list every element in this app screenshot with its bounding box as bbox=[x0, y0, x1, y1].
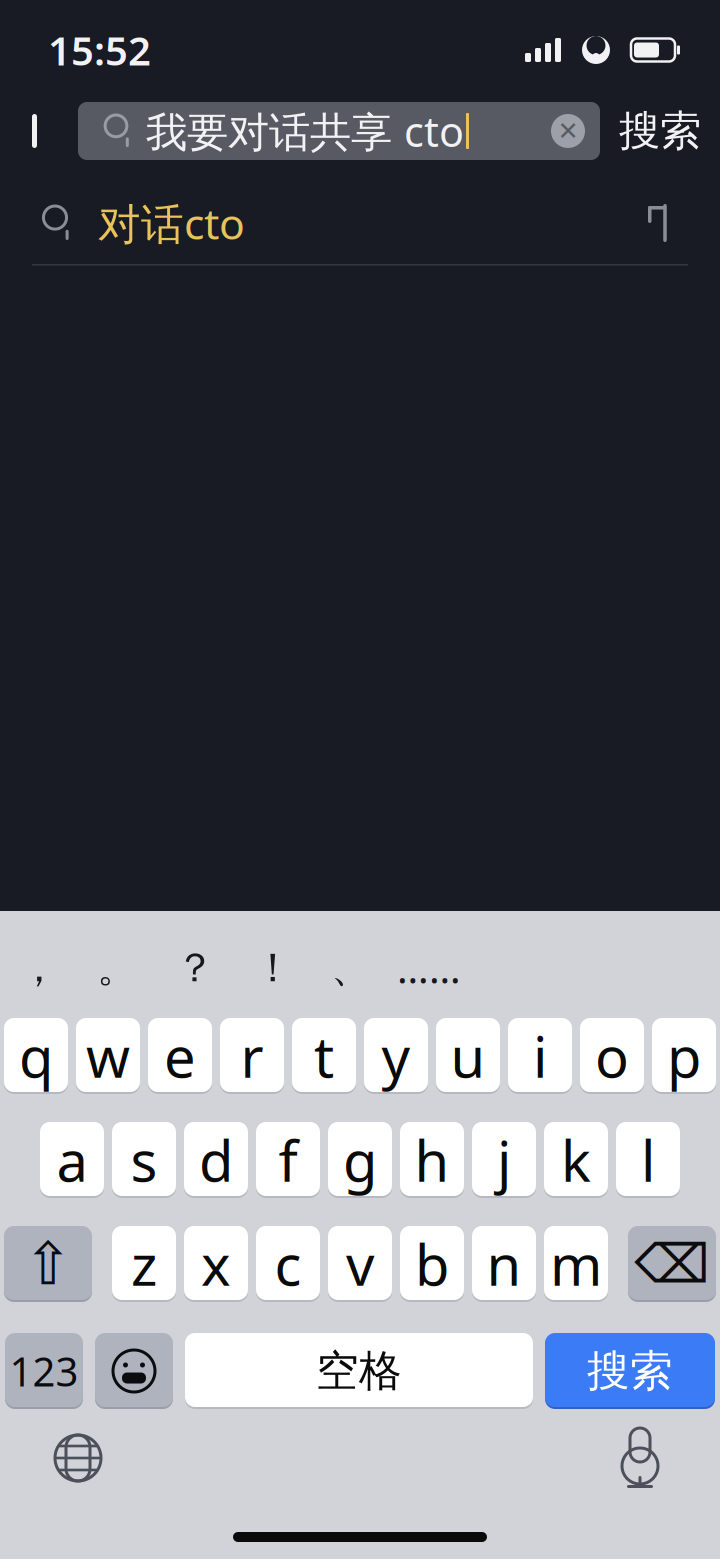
button[interactable]: p bbox=[652, 1018, 716, 1094]
button[interactable]: u bbox=[436, 1018, 500, 1094]
staticText: n bbox=[486, 1227, 521, 1301]
button[interactable]: r bbox=[220, 1018, 284, 1094]
button[interactable]: y bbox=[364, 1018, 428, 1094]
button[interactable]: 搜索 bbox=[545, 1333, 715, 1409]
button[interactable]: v bbox=[328, 1226, 392, 1302]
staticText: p bbox=[667, 1019, 701, 1093]
staticText: k bbox=[561, 1123, 591, 1197]
staticText: c bbox=[274, 1227, 301, 1301]
button[interactable]: Numbers bbox=[5, 1333, 83, 1409]
staticText: w bbox=[86, 1019, 130, 1093]
button[interactable]: c bbox=[256, 1226, 320, 1302]
staticText: e bbox=[164, 1019, 196, 1093]
staticText: 对话cto bbox=[98, 195, 245, 251]
button[interactable]: 对话cto bbox=[0, 182, 720, 264]
staticText: ⌫ bbox=[634, 1234, 709, 1294]
button[interactable]: w bbox=[76, 1018, 140, 1094]
button[interactable]: 我要对话共享 cto bbox=[78, 102, 600, 160]
staticText: 。 bbox=[97, 943, 137, 992]
staticText: 我要对话共享 cto bbox=[146, 104, 464, 158]
staticText: l bbox=[641, 1123, 655, 1197]
button[interactable]: b bbox=[400, 1226, 464, 1302]
staticText: 搜索 bbox=[587, 1345, 673, 1397]
staticText: 搜索 bbox=[619, 106, 701, 156]
button[interactable]: x bbox=[184, 1226, 248, 1302]
staticText: 、 bbox=[331, 943, 371, 992]
staticText: 空格 bbox=[316, 1345, 402, 1397]
staticText: z bbox=[131, 1227, 157, 1301]
button[interactable]: Dictate bbox=[616, 1427, 664, 1489]
staticText: i bbox=[533, 1019, 547, 1093]
staticText: ✕ bbox=[557, 117, 578, 145]
staticText: y bbox=[381, 1019, 410, 1093]
staticText: h bbox=[414, 1123, 449, 1197]
button[interactable]: d bbox=[184, 1122, 248, 1198]
button[interactable]: Switch keyboard bbox=[52, 1432, 104, 1484]
button[interactable]: q bbox=[4, 1018, 68, 1094]
staticText: q bbox=[19, 1019, 53, 1093]
staticText: f bbox=[278, 1123, 297, 1197]
button[interactable]: l bbox=[616, 1122, 680, 1198]
staticText: o bbox=[595, 1019, 629, 1093]
button[interactable]: j bbox=[472, 1122, 536, 1198]
button[interactable]: Delete bbox=[628, 1226, 716, 1302]
button[interactable]: n bbox=[472, 1226, 536, 1302]
staticText: a bbox=[56, 1123, 87, 1197]
button[interactable]: i bbox=[508, 1018, 572, 1094]
staticText: ⇧ bbox=[23, 1231, 72, 1297]
button[interactable]: Back bbox=[0, 96, 78, 166]
button[interactable]: h bbox=[400, 1122, 464, 1198]
staticText: j bbox=[497, 1123, 511, 1197]
staticText: 123 bbox=[9, 1344, 78, 1397]
button[interactable]: e bbox=[148, 1018, 212, 1094]
staticText: t bbox=[314, 1019, 334, 1093]
staticText: r bbox=[240, 1019, 263, 1093]
staticText: g bbox=[343, 1123, 377, 1197]
staticText: m bbox=[550, 1227, 602, 1301]
staticText: 15:52 bbox=[48, 23, 151, 76]
button[interactable]: z bbox=[112, 1226, 176, 1302]
staticText: x bbox=[201, 1227, 231, 1301]
staticText: …… bbox=[397, 941, 461, 994]
button[interactable]: 搜索 bbox=[600, 96, 720, 166]
staticText: ！ bbox=[253, 943, 293, 992]
button[interactable]: s bbox=[112, 1122, 176, 1198]
button[interactable]: f bbox=[256, 1122, 320, 1198]
button[interactable]: t bbox=[292, 1018, 356, 1094]
button[interactable]: o bbox=[580, 1018, 644, 1094]
staticText: b bbox=[415, 1227, 449, 1301]
button[interactable]: 空格 bbox=[185, 1333, 533, 1409]
staticText: u bbox=[450, 1019, 485, 1093]
button[interactable]: k bbox=[544, 1122, 608, 1198]
staticText: ？ bbox=[175, 943, 215, 992]
button[interactable]: Shift bbox=[4, 1226, 92, 1302]
staticText: d bbox=[199, 1123, 233, 1197]
staticText: s bbox=[130, 1123, 157, 1197]
staticText: ， bbox=[19, 943, 59, 992]
staticText: v bbox=[346, 1227, 374, 1301]
button[interactable]: g bbox=[328, 1122, 392, 1198]
button[interactable]: Emoji bbox=[95, 1333, 173, 1409]
button[interactable]: m bbox=[544, 1226, 608, 1302]
button[interactable]: a bbox=[40, 1122, 104, 1198]
